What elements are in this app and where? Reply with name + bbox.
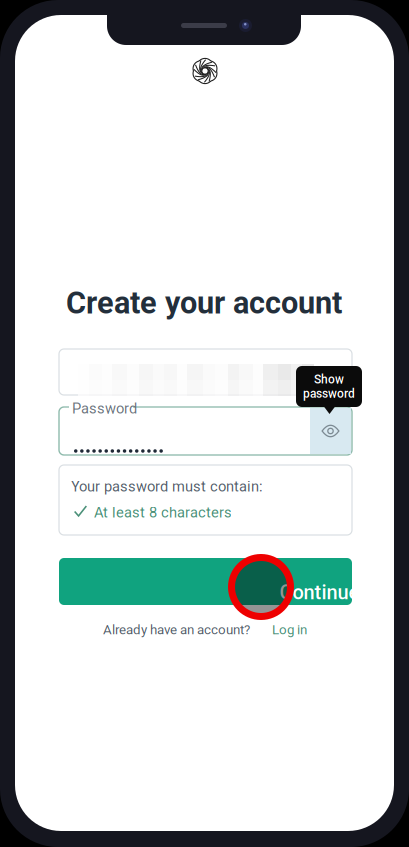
staticText: At least 8 characters	[94, 504, 232, 521]
staticText: Create your account	[66, 285, 342, 321]
button[interactable]: Continue	[59, 558, 352, 605]
button[interactable]: Log in	[272, 622, 307, 638]
staticText: Password	[72, 400, 137, 417]
button[interactable]: Show password	[310, 408, 351, 454]
staticText: password	[303, 386, 355, 401]
staticText: Continue	[279, 581, 359, 604]
button[interactable]: Email address	[59, 349, 352, 395]
staticText: Log in	[272, 622, 307, 638]
staticText: Your password must contain:	[71, 478, 263, 495]
button[interactable]: Password	[59, 407, 352, 455]
staticText: Already have an account?	[103, 622, 250, 638]
staticText: Show	[314, 372, 344, 386]
